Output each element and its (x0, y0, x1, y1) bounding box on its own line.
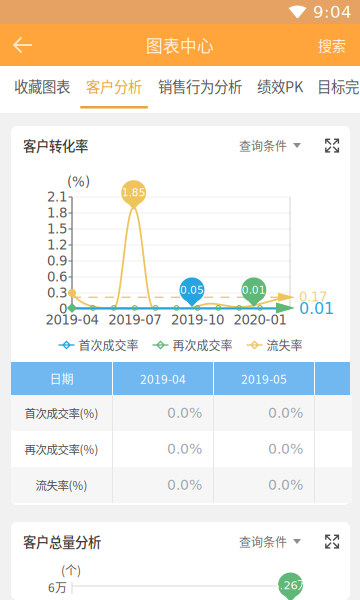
staticText: 0.01 (242, 284, 266, 296)
staticText: 客户转化率 (23, 136, 88, 155)
button[interactable]: 全屏 (301, 526, 339, 556)
button[interactable]: 客户分析 (78, 66, 150, 113)
button[interactable]: 销售行为分析 (150, 66, 250, 113)
staticText: 2019-05 (241, 370, 287, 387)
button[interactable]: 绩效PK (250, 66, 310, 113)
staticText: 2020-01 (234, 312, 287, 328)
staticText: (个) (61, 561, 81, 579)
staticText: 2019-07 (108, 312, 161, 328)
staticText: 0.6 (47, 269, 67, 285)
staticText: 1.85 (122, 186, 146, 199)
staticText: 0.05 (180, 284, 204, 296)
staticText: 0.3 (47, 285, 67, 301)
staticText: 0.0% (268, 405, 303, 421)
staticText: 6万 (48, 578, 67, 596)
button[interactable]: 返回 (0, 24, 46, 66)
staticText: 1.8 (47, 205, 67, 221)
staticText: 客户分析 (86, 76, 142, 96)
staticText: 0.0% (167, 441, 202, 457)
staticText: 0.0% (268, 441, 303, 457)
staticText: 再次成交率(%) (24, 441, 98, 457)
staticText: 2019-10 (171, 312, 224, 328)
button[interactable]: 目标完 (310, 66, 360, 113)
staticText: 1.5 (47, 221, 67, 237)
staticText: 流失率 (266, 336, 302, 354)
staticText: 2019-04 (45, 312, 98, 328)
staticText: 收藏图表 (14, 76, 70, 96)
staticText: 绩效PK (257, 76, 303, 96)
button[interactable]: 收藏图表 (6, 66, 78, 113)
staticText: 流失率(%) (35, 477, 87, 493)
staticText: 9:04 (313, 2, 352, 22)
staticText: 0.01 (299, 299, 334, 318)
staticText: 首次成交率(%) (24, 405, 98, 421)
button[interactable]: 查询条件 (239, 526, 301, 556)
staticText: 1.2 (47, 237, 67, 253)
staticText: (%) (67, 174, 90, 190)
staticText: 首次成交率 (78, 336, 138, 354)
staticText: 搜索 (318, 35, 346, 55)
staticText: 图表中心 (146, 33, 214, 57)
staticText: 客户总量分析 (23, 532, 101, 551)
staticText: 目标完 (317, 76, 359, 96)
staticText: 销售行为分析 (158, 76, 242, 96)
staticText: 2.1 (47, 189, 67, 205)
staticText: 0.9 (47, 253, 67, 269)
staticText: 再次成交率 (172, 336, 232, 354)
staticText: 2019-04 (140, 370, 186, 387)
staticText: 0.17 (299, 289, 327, 304)
button[interactable]: 查询条件 (239, 130, 301, 160)
staticText: 日期 (49, 370, 73, 387)
staticText: 0.0% (167, 477, 202, 493)
staticText: 查询条件 (239, 137, 287, 154)
staticText: 查询条件 (239, 533, 287, 550)
staticText: 0 (59, 301, 67, 317)
staticText: 0.0% (268, 477, 303, 493)
button[interactable]: 全屏 (301, 130, 339, 160)
staticText: 5.26万 (272, 578, 308, 592)
staticText: 0.0% (167, 405, 202, 421)
button[interactable]: 搜索 (304, 24, 360, 66)
